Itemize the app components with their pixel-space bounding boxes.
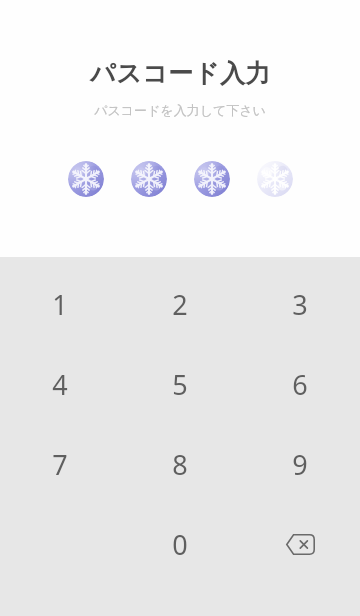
button[interactable]: 2	[120, 264, 240, 344]
staticText: 3	[292, 286, 308, 323]
staticText: 8	[172, 446, 188, 483]
staticText: 7	[52, 446, 68, 483]
button[interactable]: 0	[120, 504, 240, 584]
button[interactable]: 6	[240, 344, 360, 424]
staticText: 4	[52, 366, 68, 403]
button[interactable]: 5	[120, 344, 240, 424]
staticText: 2	[172, 286, 188, 323]
button[interactable]: 7	[0, 424, 120, 504]
staticText: 9	[292, 446, 308, 483]
button[interactable]: 3	[240, 264, 360, 344]
staticText: パスコード入力	[90, 58, 271, 89]
button[interactable]: 1	[0, 264, 120, 344]
button[interactable]: Backspace	[240, 504, 360, 584]
staticText: パスコードを入力して下さい	[94, 102, 266, 118]
button[interactable]: 9	[240, 424, 360, 504]
button[interactable]: 4	[0, 344, 120, 424]
staticText: 6	[292, 366, 308, 403]
staticText: 1	[52, 286, 68, 323]
button[interactable]: 8	[120, 424, 240, 504]
staticText: 5	[172, 366, 188, 403]
staticText: 0	[172, 526, 188, 563]
